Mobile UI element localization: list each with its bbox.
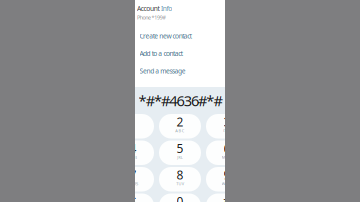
staticText: * — [129, 193, 136, 202]
staticText: 0 — [176, 193, 183, 202]
staticText: Phone *199# — [137, 14, 165, 21]
button[interactable]: 2 — [159, 114, 201, 138]
staticText: 9 — [223, 167, 230, 183]
staticText: 3 — [223, 114, 230, 130]
button[interactable]: 8 — [159, 167, 201, 191]
button[interactable]: 5 — [159, 140, 201, 165]
button[interactable]: Add to a contact — [137, 45, 225, 62]
button[interactable]: 6 — [206, 140, 248, 165]
button[interactable]: * — [112, 193, 154, 202]
staticText: Info — [161, 4, 172, 13]
staticText: *#*#4636#*# — [138, 91, 222, 110]
staticText: MNO — [222, 155, 232, 160]
staticText: Account — [137, 4, 159, 13]
button[interactable]: 9 — [206, 167, 248, 191]
staticText: 8 — [176, 167, 183, 183]
button[interactable]: 7 — [112, 167, 154, 191]
button[interactable]: 0 — [159, 193, 201, 202]
staticText: PQRS — [128, 181, 138, 186]
staticText: Create new contact — [139, 32, 192, 40]
staticText: JKL — [177, 155, 183, 160]
button[interactable]: Send a message — [137, 62, 225, 80]
staticText: Add to a contact — [139, 49, 183, 58]
staticText: 2 — [176, 114, 183, 130]
button[interactable]: 3 — [206, 114, 248, 138]
staticText: WXYZ — [222, 181, 232, 186]
staticText: Send a message — [139, 67, 186, 75]
staticText: 4 — [129, 140, 136, 156]
staticText: 6 — [223, 140, 230, 156]
staticText: 5 — [176, 140, 183, 156]
staticText: 1 — [129, 114, 136, 130]
button[interactable]: 1 — [112, 114, 154, 138]
staticText: DEF — [223, 128, 231, 133]
staticText: TUV — [176, 181, 184, 186]
staticText: # — [223, 193, 231, 202]
button[interactable]: Create new contact — [137, 27, 225, 45]
button[interactable]: 4 — [112, 140, 154, 165]
staticText: ABC — [175, 128, 185, 133]
staticText: GHI — [129, 155, 137, 160]
button[interactable]: # — [206, 193, 248, 202]
staticText: 7 — [129, 167, 136, 183]
